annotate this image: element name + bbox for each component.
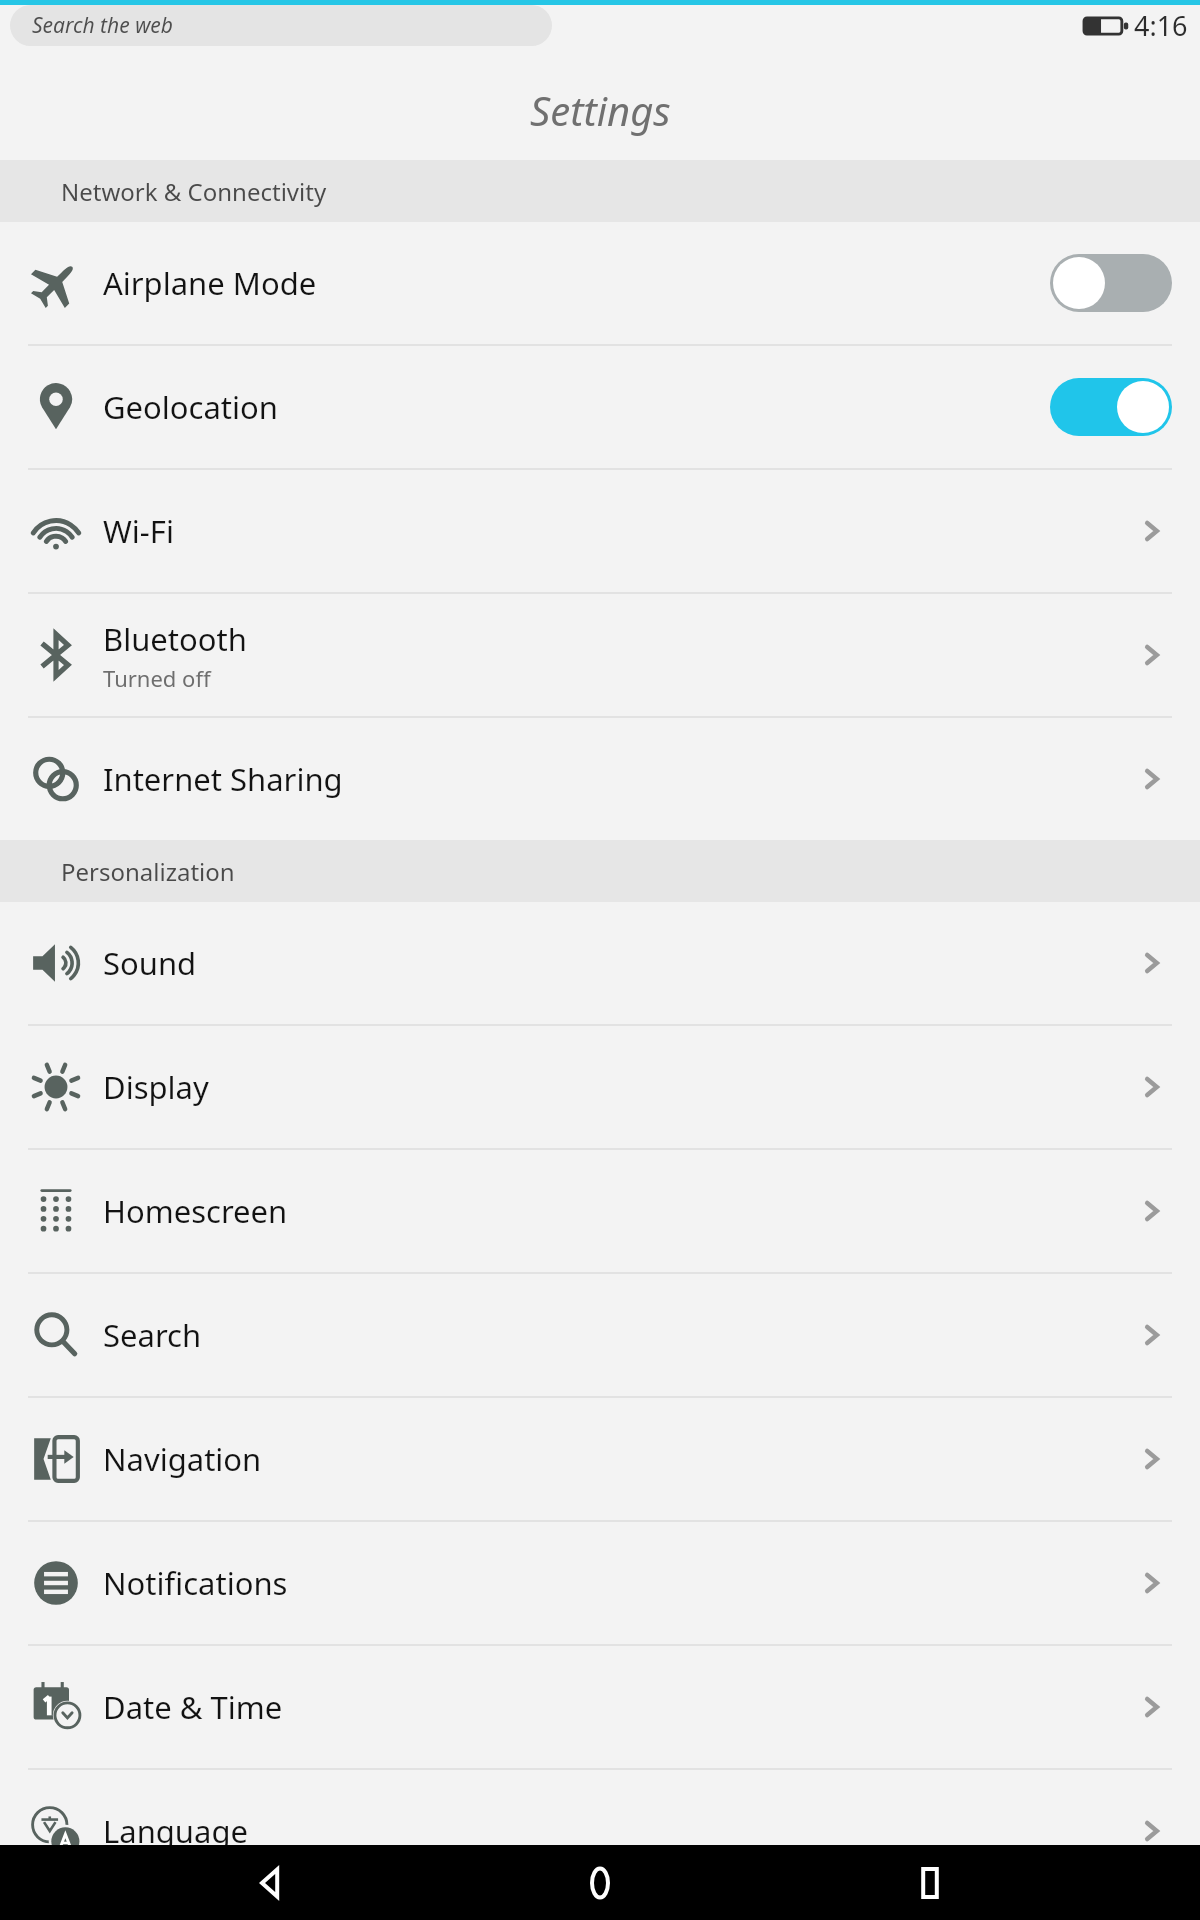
other: Open [1132, 943, 1172, 983]
other: Open [1132, 1563, 1172, 1603]
button[interactable]: Language [0, 1770, 1200, 1892]
button[interactable]: Recent apps [870, 1845, 990, 1920]
other: Open [1132, 1439, 1172, 1479]
staticText: Sound [103, 942, 197, 984]
other: Open [1132, 1687, 1172, 1727]
button[interactable]: Airplane Mode [0, 222, 1200, 346]
button[interactable]: Date & Time [0, 1646, 1200, 1770]
button[interactable]: Airplane Mode off [1050, 254, 1172, 312]
staticText: Homescreen [103, 1190, 288, 1232]
button[interactable]: Back [210, 1845, 330, 1920]
staticText: Display [103, 1066, 209, 1108]
button[interactable]: Geolocation [0, 346, 1200, 470]
staticText: Date & Time [103, 1686, 283, 1728]
other: Open [1132, 511, 1172, 551]
button[interactable]: Geolocation on [1050, 378, 1172, 436]
staticText: Airplane Mode [103, 262, 317, 304]
staticText: Internet Sharing [103, 758, 343, 800]
other: Open [1132, 1315, 1172, 1355]
button[interactable]: Wi-Fi [0, 470, 1200, 594]
other: Open [1132, 759, 1172, 799]
other: Open [1132, 635, 1172, 675]
staticText: Search [103, 1314, 202, 1356]
staticText: Network & Connectivity [61, 175, 327, 208]
staticText: Notifications [103, 1562, 288, 1604]
staticText: Turned off [103, 663, 211, 693]
other: Open [1132, 1191, 1172, 1231]
staticText: Geolocation [103, 386, 278, 428]
button[interactable]: Search the web [10, 5, 552, 46]
button[interactable]: Home [540, 1845, 660, 1920]
staticText: Bluetooth [103, 618, 247, 660]
staticText: Language [103, 1810, 248, 1852]
staticText: Settings [530, 83, 671, 137]
button[interactable]: Notifications [0, 1522, 1200, 1646]
other: Open [1132, 1811, 1172, 1851]
button[interactable]: Internet Sharing [0, 718, 1200, 840]
button[interactable]: Display [0, 1026, 1200, 1150]
staticText: 4:16 [1134, 7, 1188, 44]
button[interactable]: Navigation [0, 1398, 1200, 1522]
button[interactable]: Homescreen [0, 1150, 1200, 1274]
staticText: Navigation [103, 1438, 262, 1480]
other: Open [1132, 1067, 1172, 1107]
staticText: Personalization [61, 855, 235, 888]
button[interactable]: Search [0, 1274, 1200, 1398]
button[interactable]: Sound [0, 902, 1200, 1026]
button[interactable]: Bluetooth [0, 594, 1200, 718]
staticText: Search the web [32, 11, 173, 40]
staticText: Wi-Fi [103, 510, 174, 552]
